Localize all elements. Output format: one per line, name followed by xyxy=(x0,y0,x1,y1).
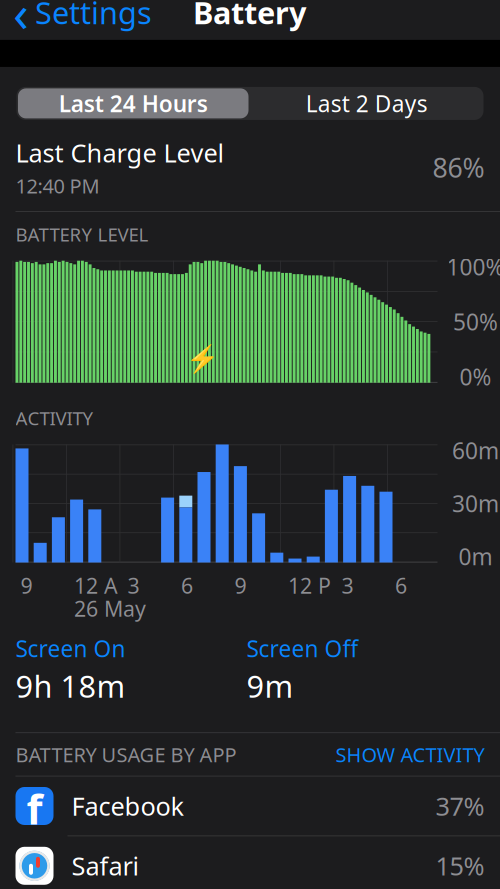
staticText: Screen On xyxy=(15,633,125,664)
button[interactable]: Safari xyxy=(0,836,500,889)
staticText: ACTIVITY xyxy=(15,406,93,430)
staticText: 60m xyxy=(452,435,499,466)
staticText: Last Charge Level xyxy=(15,136,224,169)
staticText: 3 xyxy=(127,571,139,600)
staticText: 37% xyxy=(435,789,484,823)
staticText: BATTERY USAGE BY APP xyxy=(15,741,236,768)
staticText: SHOW ACTIVITY xyxy=(335,741,484,768)
staticText: 0% xyxy=(459,362,491,392)
staticText: 50% xyxy=(453,307,498,337)
button[interactable]: ‹ xyxy=(0,0,162,37)
staticText: Last 2 Days xyxy=(306,88,428,118)
staticText: 86% xyxy=(432,150,484,185)
staticText: Battery xyxy=(193,0,307,33)
button[interactable]: SHOW ACTIVITY xyxy=(335,741,484,768)
staticText: 9 xyxy=(234,571,246,600)
staticText: 12:40 PM xyxy=(15,173,99,199)
staticText: ‹ xyxy=(13,0,29,46)
staticText: ⚡ xyxy=(185,343,218,374)
staticText: Settings xyxy=(35,0,152,33)
staticText: 100% xyxy=(446,252,500,282)
staticText: 12 P xyxy=(288,571,331,600)
staticText: 30m xyxy=(452,488,499,518)
staticText: 3 xyxy=(341,571,353,600)
staticText: 6 xyxy=(395,571,407,600)
staticText: f xyxy=(26,781,42,836)
staticText: 6 xyxy=(181,571,193,600)
button[interactable]: Last 2 Days xyxy=(250,87,483,120)
staticText: 9h 18m xyxy=(15,666,125,706)
button[interactable]: Last 24 Hours xyxy=(16,87,250,120)
staticText: Facebook xyxy=(71,789,184,823)
staticText: Screen Off xyxy=(246,633,358,664)
staticText: Last 24 Hours xyxy=(59,88,208,118)
staticText: 26 May xyxy=(74,594,146,623)
staticText: 15% xyxy=(435,849,484,883)
staticText: Safari xyxy=(71,849,139,883)
staticText: 12 A xyxy=(74,571,118,600)
staticText: 9 xyxy=(20,571,32,600)
staticText: 9m xyxy=(246,666,293,706)
button[interactable]: f xyxy=(0,776,500,835)
staticText: BATTERY LEVEL xyxy=(15,222,148,247)
staticText: 0m xyxy=(458,541,492,571)
